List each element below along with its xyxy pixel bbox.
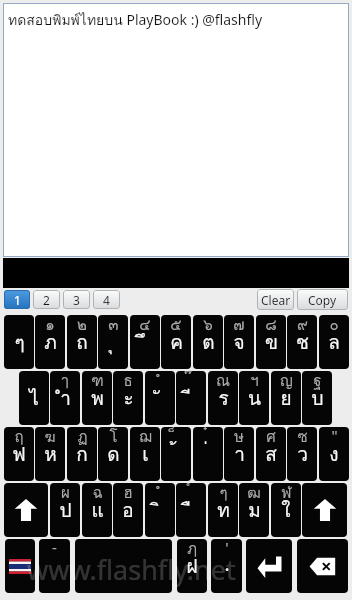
button[interactable]: ๑ — [35, 315, 65, 369]
button[interactable]: ๋ — [193, 427, 223, 481]
button[interactable]: ไ — [19, 371, 49, 425]
button[interactable]: key — [39, 539, 70, 593]
staticText: ฤ — [14, 427, 24, 449]
button[interactable]: ฮ — [113, 483, 143, 537]
staticText: ฌ — [139, 427, 152, 449]
button[interactable]: ฦ — [177, 539, 207, 593]
staticText: ส — [265, 439, 277, 469]
staticText: ย — [280, 383, 292, 413]
button[interactable]: โ — [98, 427, 128, 481]
staticText: Clear — [261, 292, 291, 308]
button[interactable]: 4 — [93, 290, 120, 309]
staticText: น — [248, 383, 261, 413]
button[interactable]: ๖ — [193, 315, 223, 369]
button[interactable]: ฒ — [239, 483, 269, 537]
button[interactable]: ฤ — [4, 427, 34, 481]
button[interactable]: ๕ — [161, 315, 191, 369]
staticText: ๆ — [14, 327, 25, 357]
staticText: ๆ — [219, 483, 228, 505]
staticText: " — [331, 427, 338, 445]
button[interactable]: " — [319, 427, 349, 481]
button[interactable]: ทดสอบพิมพ์ไทยบน PlayBook :) @flashfly — [3, 3, 349, 257]
button[interactable]: ฐ — [302, 371, 332, 425]
button[interactable]: ๔ — [130, 315, 160, 369]
button[interactable]: ษ — [224, 427, 254, 481]
button[interactable]: ๓ — [98, 315, 128, 369]
staticText: ทดสอบพิมพ์ไทยบน PlayBook :) @flashfly — [8, 9, 263, 31]
button[interactable]: ฯ — [239, 371, 269, 425]
staticText: ล — [328, 327, 340, 357]
button[interactable]: ๗ — [224, 315, 254, 369]
button[interactable]: ๆ — [208, 483, 238, 537]
staticText: ๘ — [265, 315, 277, 337]
button[interactable]: ซ — [287, 427, 317, 481]
staticText: ญ — [280, 371, 293, 393]
staticText: ฮ — [123, 483, 133, 505]
staticText: ะ — [123, 383, 134, 413]
staticText: ฝ — [186, 551, 198, 581]
staticText: ห — [44, 439, 57, 469]
button[interactable]: 1 — [4, 290, 30, 309]
staticText: ง — [329, 439, 339, 469]
staticText: ภ — [44, 327, 57, 357]
staticText: ผ — [61, 483, 70, 505]
staticText: - — [52, 539, 57, 557]
button[interactable]: 3 — [63, 290, 90, 309]
button[interactable]: ๐ — [319, 315, 349, 369]
button[interactable]: ๒ — [67, 315, 97, 369]
staticText: ๒ — [77, 315, 87, 337]
staticText: ช — [296, 327, 309, 357]
staticText: ฑ — [91, 371, 104, 393]
button[interactable]: 2 — [33, 290, 60, 309]
button[interactable]: Thai language — [5, 539, 35, 593]
staticText: ๅ — [61, 371, 69, 393]
staticText: ฐ — [313, 371, 322, 393]
staticText: จ — [233, 327, 245, 357]
staticText: ฏ — [77, 427, 88, 449]
button[interactable]: ํ — [145, 371, 175, 425]
button[interactable]: ผ — [50, 483, 80, 537]
button[interactable]: ฑ — [82, 371, 112, 425]
button[interactable]: ศ — [256, 427, 286, 481]
staticText: 2 — [43, 292, 50, 308]
button[interactable]: ๆ — [4, 315, 34, 369]
staticText: ณ — [216, 371, 230, 393]
button[interactable]: ญ — [271, 371, 301, 425]
button[interactable]: ' — [211, 539, 242, 593]
staticText: ร — [218, 383, 229, 413]
staticText: ษ — [234, 427, 244, 449]
staticText: ม — [248, 495, 261, 525]
staticText: ฟ — [12, 439, 26, 469]
button[interactable]: ๘ — [256, 315, 286, 369]
staticText: ๐ — [329, 315, 339, 337]
button[interactable]: Enter — [246, 539, 292, 593]
staticText: ข — [265, 327, 278, 357]
button[interactable]: ฌ — [130, 427, 160, 481]
button[interactable]: Clear — [257, 289, 294, 310]
staticText: ๙ — [297, 315, 308, 337]
button[interactable]: ธ — [113, 371, 143, 425]
staticText: ฯ — [250, 371, 259, 393]
button[interactable]: Shift — [302, 483, 347, 537]
button[interactable]: ฉ — [82, 483, 112, 537]
button[interactable]: ์ — [176, 483, 206, 537]
staticText: เ — [142, 439, 149, 469]
button[interactable]: ฏ — [67, 427, 97, 481]
staticText: า — [234, 439, 245, 469]
button[interactable]: ๊ — [176, 371, 206, 425]
button[interactable]: ํ — [145, 483, 175, 537]
button[interactable]: ฆ — [35, 427, 65, 481]
button[interactable]: Copy — [297, 289, 348, 310]
button[interactable]: ฬ — [271, 483, 301, 537]
staticText: ฉ — [92, 483, 103, 505]
button[interactable]: ๅ — [50, 371, 80, 425]
button[interactable]: ็ — [161, 427, 191, 481]
button[interactable]: ณ — [208, 371, 238, 425]
button[interactable]: Backspace — [297, 539, 348, 593]
button[interactable]: Space — [75, 539, 172, 593]
button[interactable]: Shift — [4, 483, 48, 537]
staticText: ๖ — [203, 315, 213, 337]
staticText: ๗ — [233, 315, 245, 337]
button[interactable]: ๙ — [287, 315, 317, 369]
staticText: ไ — [29, 383, 39, 413]
